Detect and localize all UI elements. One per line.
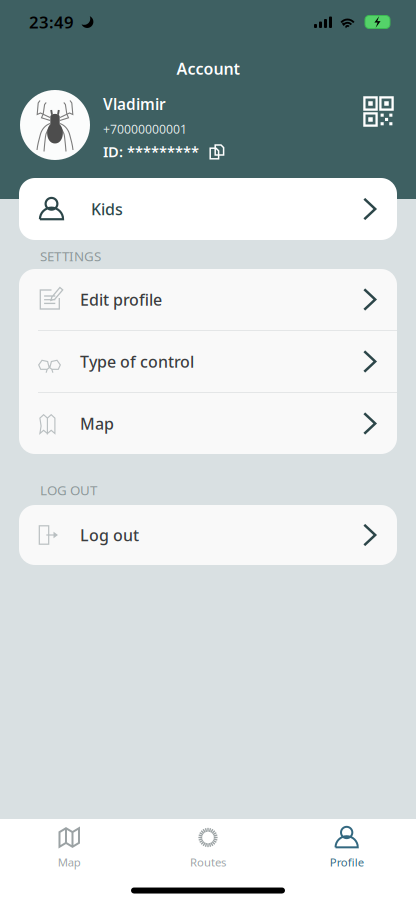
button[interactable]: Profile <box>277 817 416 879</box>
staticText: LOG OUT <box>40 481 97 499</box>
button[interactable]: Log out <box>19 505 397 565</box>
staticText: Profile <box>330 854 364 870</box>
button[interactable]: Edit profile <box>19 269 397 330</box>
button[interactable]: Map <box>0 817 139 879</box>
staticText: Vladimir <box>103 94 166 114</box>
staticText: Type of control <box>80 351 194 372</box>
staticText: 23:49 <box>29 11 74 33</box>
staticText: SETTINGS <box>40 247 101 265</box>
button[interactable]: Show QR code <box>357 90 400 133</box>
staticText: Kids <box>91 198 123 220</box>
button[interactable]: Routes <box>139 817 277 879</box>
staticText: Map <box>80 413 114 434</box>
button[interactable]: Map <box>19 393 397 454</box>
staticText: Log out <box>80 524 139 546</box>
staticText: Edit profile <box>80 289 162 310</box>
staticText: +70000000001 <box>103 121 187 137</box>
staticText: Account <box>176 58 239 79</box>
staticText: Routes <box>190 854 226 870</box>
staticText: Map <box>58 854 81 870</box>
button[interactable]: Kids <box>19 178 397 240</box>
button[interactable]: Type of control <box>19 331 397 392</box>
staticText: ID: ********* <box>103 141 199 161</box>
